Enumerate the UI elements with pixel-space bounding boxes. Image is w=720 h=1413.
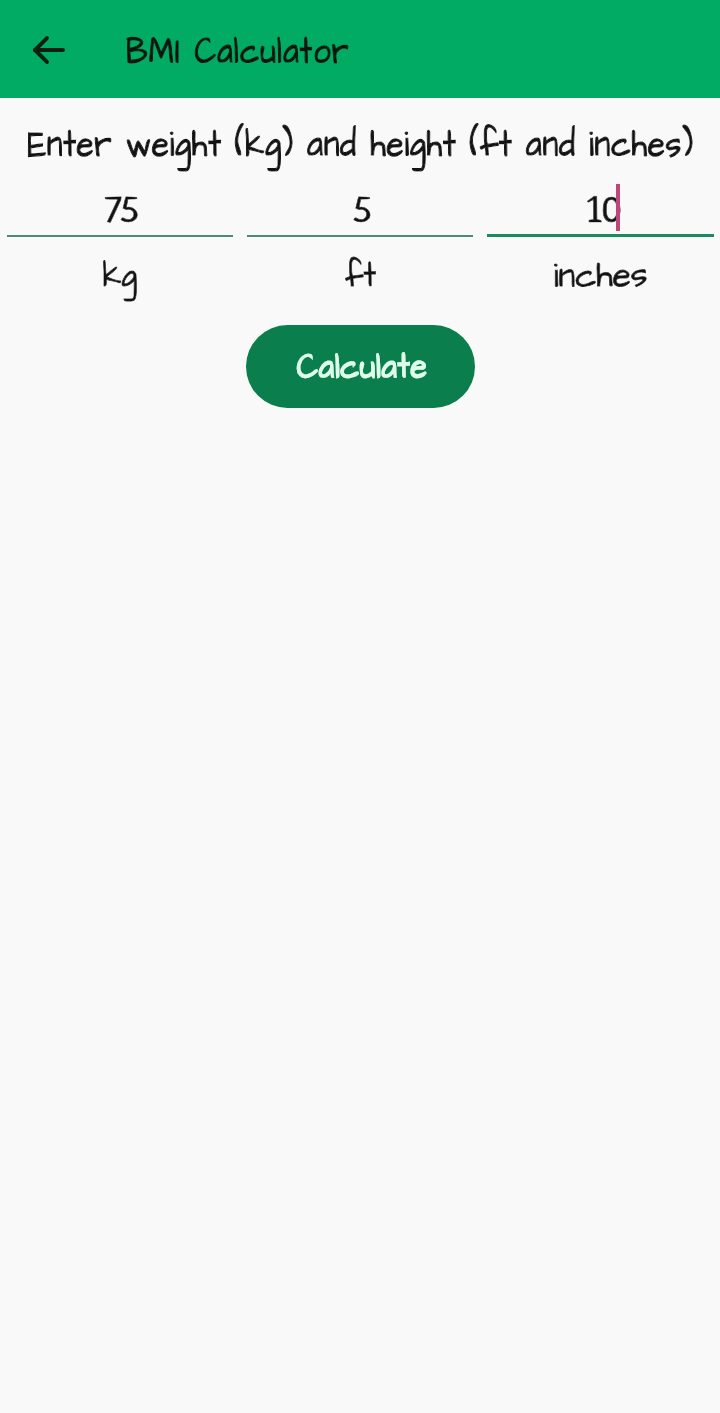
staticText: BMI Calculator xyxy=(126,27,350,78)
staticText: Calculate xyxy=(297,342,428,392)
button[interactable]: Back xyxy=(20,22,76,78)
staticText: 10 xyxy=(587,196,623,232)
staticText: kg xyxy=(102,251,138,300)
staticText: 75 xyxy=(105,196,138,232)
staticText: BMI Calculator xyxy=(126,27,350,78)
button[interactable]: inches xyxy=(487,180,714,238)
button[interactable] xyxy=(246,325,475,408)
staticText: ft xyxy=(345,251,376,300)
button[interactable]: ft xyxy=(247,180,473,238)
button[interactable]: BMI Calculator xyxy=(110,14,370,84)
staticText: 75 xyxy=(105,196,138,232)
staticText: ft xyxy=(345,251,376,300)
staticText: kg xyxy=(102,251,138,300)
staticText: 5 xyxy=(354,196,371,232)
staticText: 5 xyxy=(354,196,371,232)
staticText: Enter weight (kg) and height (ft and inc… xyxy=(27,119,695,171)
staticText: Enter weight (kg) and height (ft and inc… xyxy=(27,119,695,171)
staticText: inches xyxy=(553,251,648,300)
staticText: Calculate xyxy=(297,342,428,392)
button[interactable]: kg xyxy=(7,180,233,238)
staticText: inches xyxy=(553,251,648,300)
staticText: 10 xyxy=(587,196,623,232)
